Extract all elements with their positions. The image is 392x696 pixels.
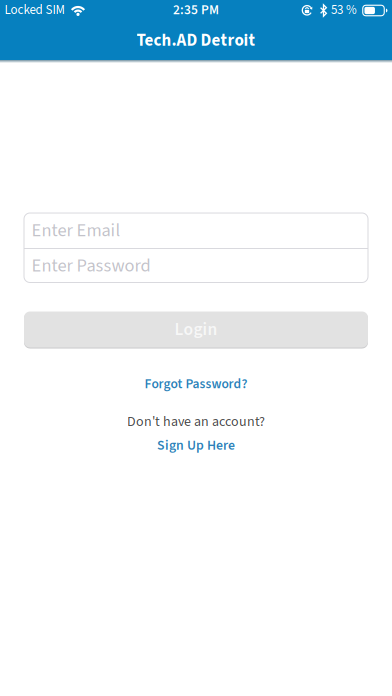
staticText: Don't have an account?: [127, 412, 265, 432]
staticText: Tech.AD Detroit: [136, 28, 255, 53]
staticText: Enter Email: [31, 217, 120, 244]
button[interactable]: Enter Email: [24, 213, 368, 248]
button[interactable]: Forgot Password?: [144, 374, 247, 394]
staticText: Login: [174, 317, 217, 342]
staticText: Sign Up Here: [157, 436, 235, 455]
button[interactable]: Login: [24, 311, 368, 347]
staticText: Enter Password: [31, 253, 150, 279]
button[interactable]: Sign Up Here: [157, 436, 235, 455]
button[interactable]: Enter Password: [24, 249, 368, 282]
staticText: Locked SIM: [4, 1, 64, 19]
staticText: Forgot Password?: [144, 374, 247, 394]
staticText: 53 %: [331, 1, 357, 19]
staticText: 2:35 PM: [173, 0, 219, 20]
